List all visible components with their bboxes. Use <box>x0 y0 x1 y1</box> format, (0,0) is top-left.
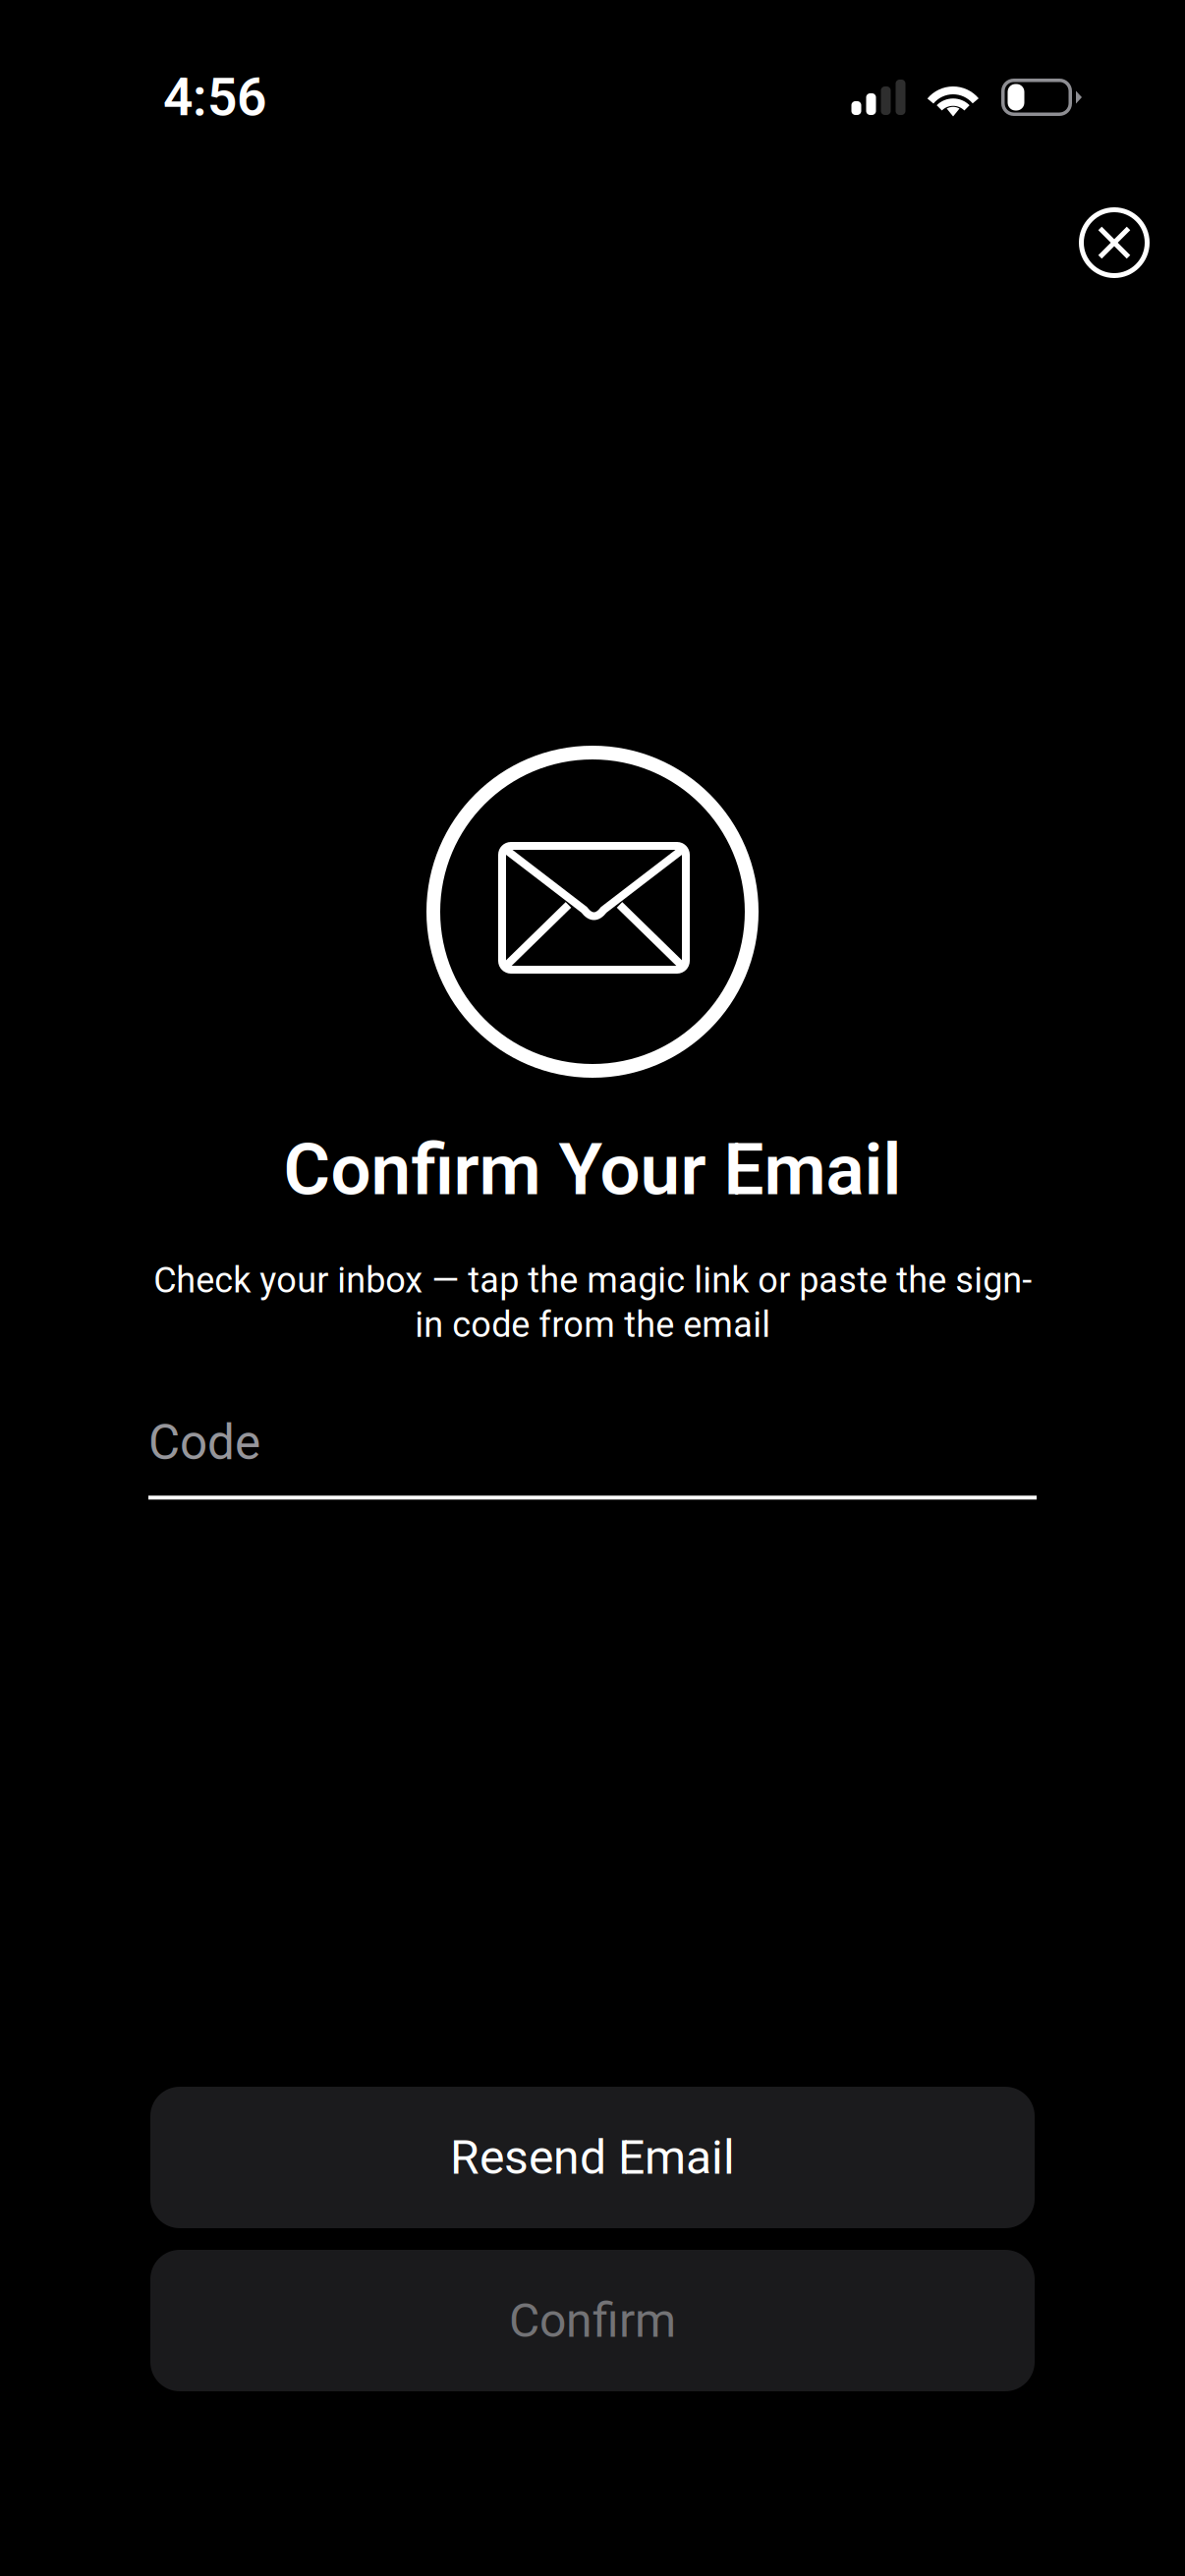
button[interactable]: Code <box>148 1414 1037 1500</box>
staticText: Check your inbox — tap the magic link or… <box>153 1260 1032 1346</box>
button[interactable]: Confirm <box>150 2250 1035 2391</box>
button[interactable]: Resend Email <box>150 2087 1035 2228</box>
staticText: 4:56 <box>163 67 266 128</box>
button[interactable]: Close <box>1079 207 1150 278</box>
staticText: Confirm <box>509 2293 676 2348</box>
staticText: Code <box>148 1414 260 1471</box>
staticText: Resend Email <box>450 2130 735 2185</box>
staticText: Confirm Your Email <box>283 1128 902 1212</box>
